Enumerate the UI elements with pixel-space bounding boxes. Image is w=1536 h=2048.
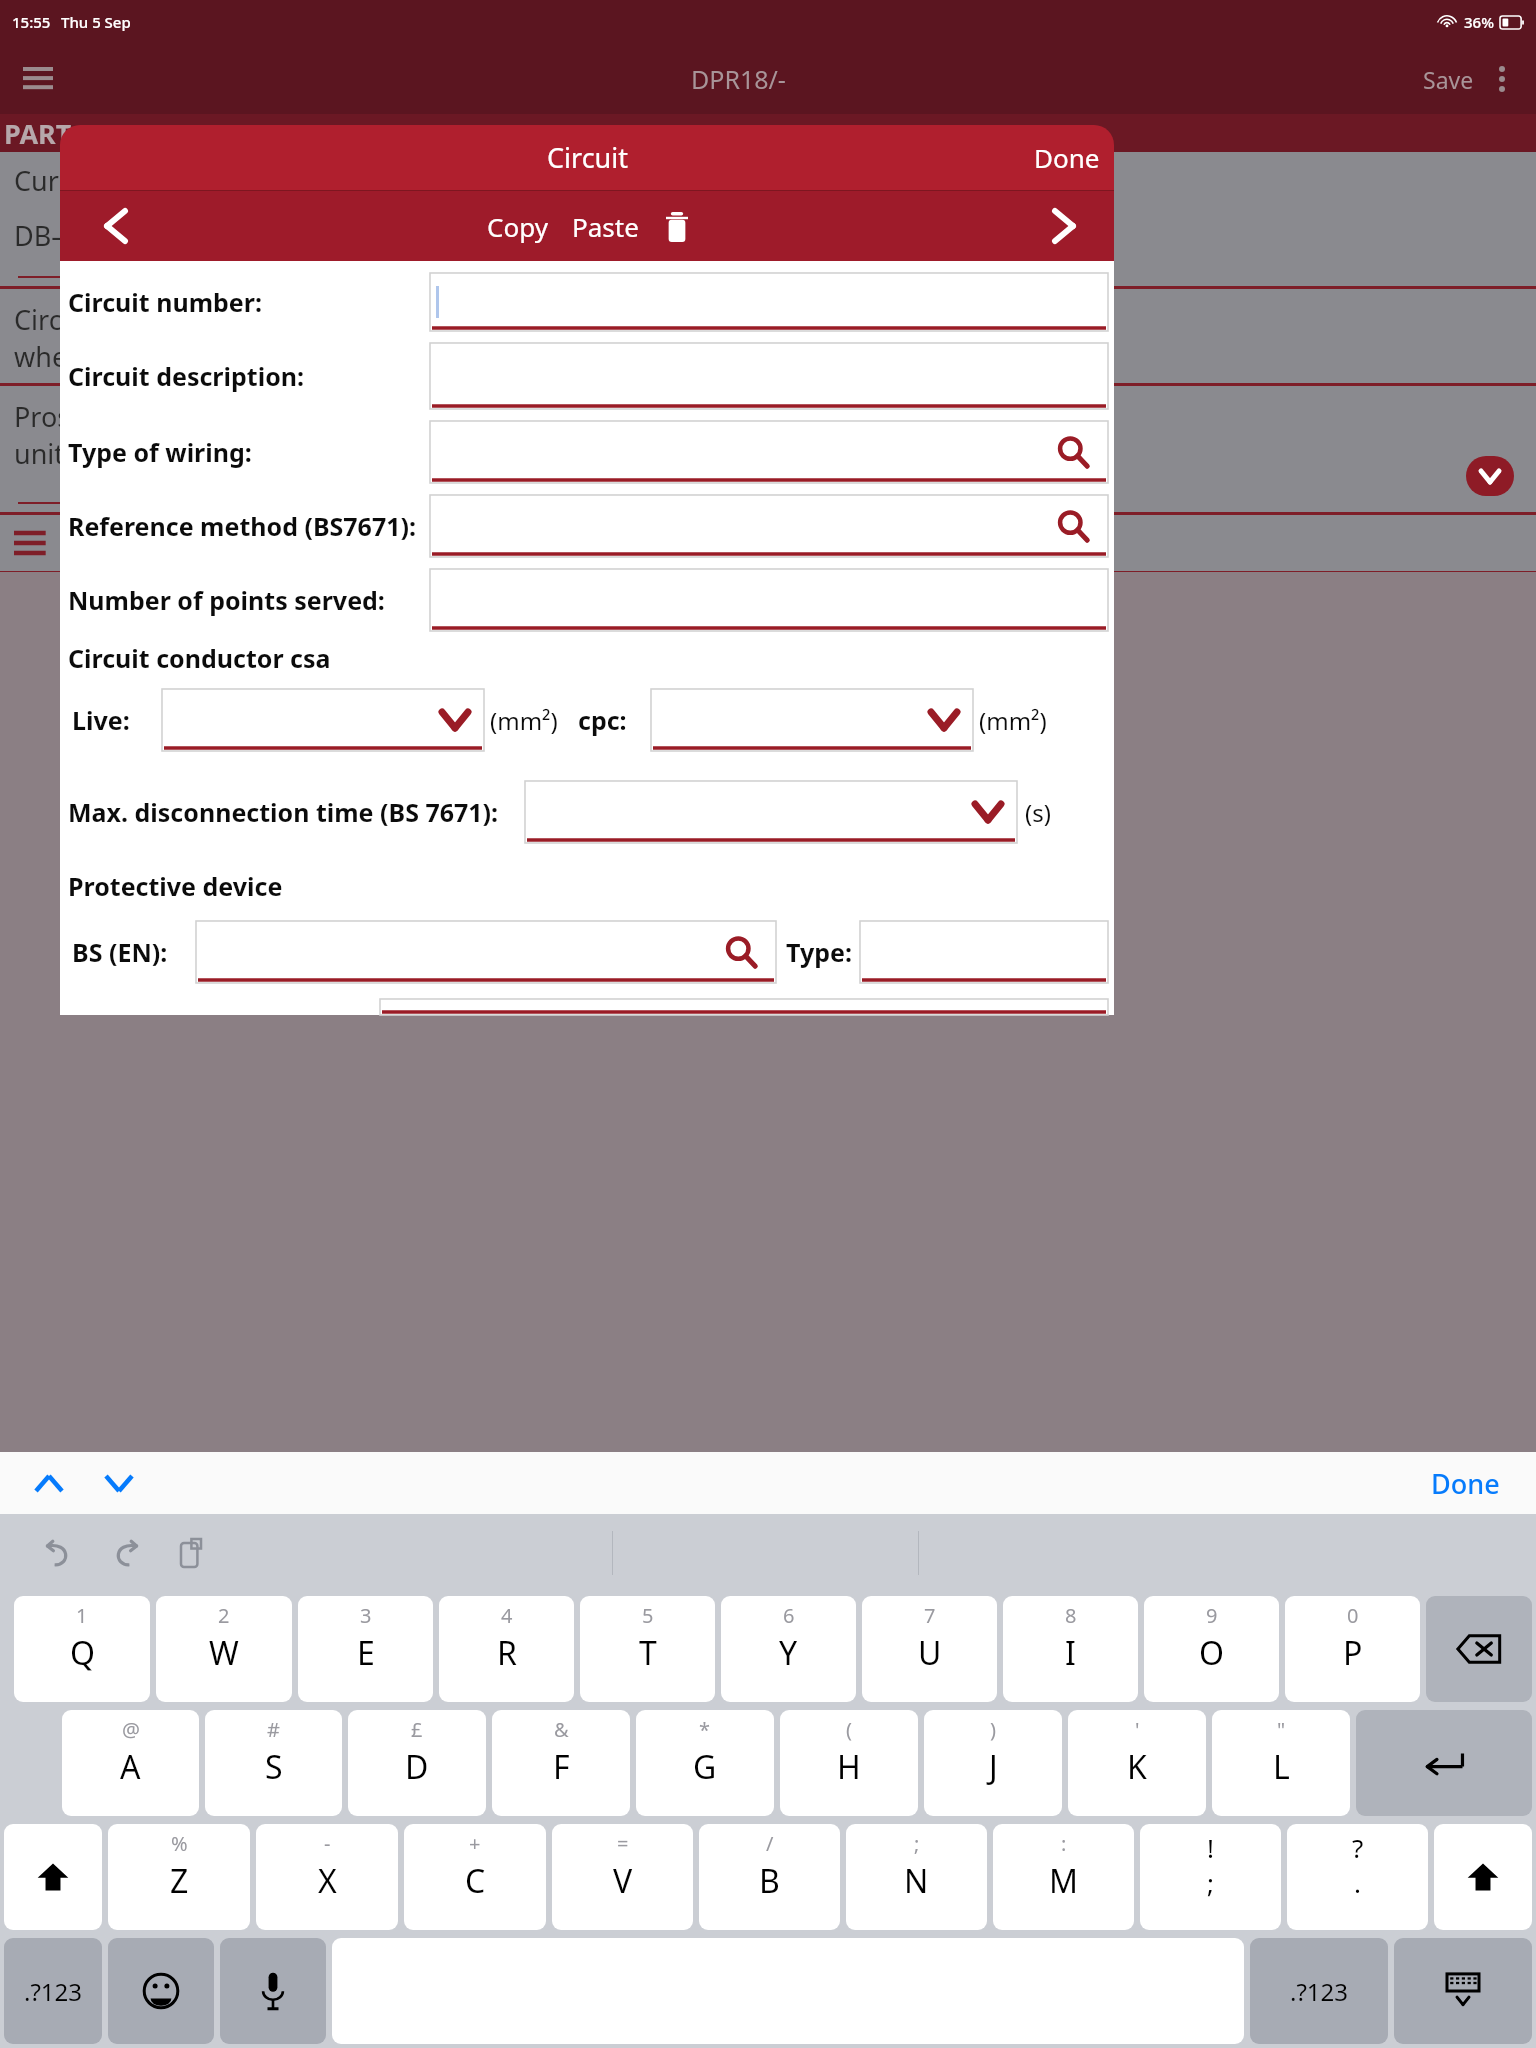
staticText: L — [1273, 1745, 1290, 1789]
button[interactable]: ! — [1140, 1824, 1281, 1930]
button[interactable]: # — [205, 1710, 342, 1816]
button[interactable]: / — [699, 1824, 840, 1930]
staticText: ! — [1207, 1830, 1214, 1865]
button[interactable] — [525, 781, 1017, 843]
button[interactable] — [196, 921, 776, 983]
button[interactable] — [651, 689, 973, 751]
button[interactable]: 9 — [1144, 1596, 1279, 1702]
staticText: .?123 — [24, 1975, 83, 2008]
staticText: 5 — [642, 1602, 654, 1629]
button[interactable]: 3 — [298, 1596, 433, 1702]
staticText: C — [465, 1859, 486, 1903]
button[interactable]: Previous — [94, 204, 138, 248]
button[interactable] — [108, 1938, 214, 2044]
button[interactable] — [380, 999, 1108, 1015]
button[interactable]: ( — [780, 1710, 918, 1816]
staticText: Save — [1423, 64, 1474, 95]
button[interactable]: Done — [1020, 132, 1114, 183]
button[interactable]: - — [256, 1824, 398, 1930]
button[interactable]: Redo — [102, 1528, 152, 1578]
staticText: / — [766, 1830, 774, 1857]
staticText: D — [405, 1745, 429, 1789]
button[interactable]: : — [993, 1824, 1134, 1930]
button[interactable]: % — [108, 1824, 250, 1930]
button[interactable] — [1356, 1710, 1532, 1816]
button[interactable]: 5 — [580, 1596, 715, 1702]
button[interactable] — [1394, 1938, 1532, 2044]
button[interactable]: ' — [1068, 1710, 1206, 1816]
button[interactable]: Expand — [1466, 456, 1514, 496]
staticText: 0 — [1347, 1602, 1359, 1629]
button[interactable]: " — [1212, 1710, 1350, 1816]
button[interactable]: Previous field — [26, 1460, 72, 1506]
button[interactable]: = — [552, 1824, 693, 1930]
button[interactable]: 0 — [1285, 1596, 1420, 1702]
button[interactable]: 1 — [14, 1596, 150, 1702]
button[interactable] — [1434, 1824, 1532, 1930]
button[interactable]: Done — [1421, 1457, 1510, 1510]
button[interactable]: Undo — [32, 1528, 82, 1578]
staticText: 3 — [360, 1602, 372, 1629]
button[interactable]: Delete — [657, 207, 697, 247]
button[interactable] — [4, 1824, 102, 1930]
staticText: 7 — [924, 1602, 936, 1629]
staticText: Type of wiring: — [68, 435, 252, 469]
staticText: X — [318, 1859, 337, 1903]
button[interactable]: .?123 — [1250, 1938, 1388, 2044]
button[interactable]: Copy — [477, 201, 558, 252]
staticText: 8 — [1065, 1602, 1077, 1629]
button[interactable]: 4 — [439, 1596, 574, 1702]
staticText: 2 — [218, 1602, 230, 1629]
button[interactable]: More options — [1482, 59, 1522, 99]
staticText: Protective device — [68, 869, 283, 903]
staticText: I — [1065, 1631, 1076, 1675]
button[interactable] — [430, 273, 1108, 331]
button[interactable]: .?123 — [4, 1938, 102, 2044]
staticText: U — [918, 1631, 942, 1675]
button[interactable]: 6 — [721, 1596, 856, 1702]
staticText: @ — [122, 1716, 140, 1743]
button[interactable] — [860, 921, 1108, 983]
button[interactable]: Next field — [96, 1460, 142, 1506]
staticText: . — [1354, 1865, 1361, 1900]
staticText: Circ — [14, 301, 62, 338]
button[interactable]: £ — [348, 1710, 486, 1816]
button[interactable]: @ — [62, 1710, 199, 1816]
button[interactable] — [162, 689, 484, 751]
button[interactable]: + — [404, 1824, 546, 1930]
button[interactable] — [430, 343, 1108, 409]
button[interactable] — [430, 569, 1108, 631]
staticText: 36% — [1464, 12, 1494, 32]
button[interactable]: * — [636, 1710, 774, 1816]
staticText: - — [324, 1830, 331, 1857]
button[interactable]: ) — [924, 1710, 1062, 1816]
staticText: £ — [411, 1716, 423, 1743]
staticText: B — [759, 1859, 780, 1903]
button[interactable]: 7 — [862, 1596, 997, 1702]
button[interactable]: ? — [1287, 1824, 1428, 1930]
staticText: P — [1343, 1631, 1363, 1675]
button[interactable]: Paste — [166, 1528, 216, 1578]
button[interactable]: 8 — [1003, 1596, 1138, 1702]
button[interactable] — [1426, 1596, 1532, 1702]
button[interactable]: Menu — [14, 55, 62, 103]
staticText: A — [120, 1745, 141, 1789]
staticText: Copy — [487, 209, 548, 244]
button[interactable] — [430, 421, 1108, 483]
button[interactable]: 2 — [156, 1596, 292, 1702]
staticText: Done — [1431, 1465, 1500, 1502]
staticText: " — [1277, 1716, 1286, 1743]
staticText: 4 — [501, 1602, 513, 1629]
button[interactable] — [220, 1938, 326, 2044]
button[interactable] — [430, 495, 1108, 557]
button[interactable]: Save — [1415, 58, 1482, 101]
staticText: V — [613, 1859, 633, 1903]
button[interactable]: Paste — [562, 201, 649, 252]
button[interactable]: ; — [846, 1824, 987, 1930]
staticText: Number of points served: — [68, 583, 385, 617]
staticText: Max. disconnection time (BS 7671): — [68, 795, 499, 829]
button[interactable]: & — [492, 1710, 630, 1816]
button[interactable]: Next — [1042, 204, 1086, 248]
staticText: ) — [990, 1716, 996, 1743]
